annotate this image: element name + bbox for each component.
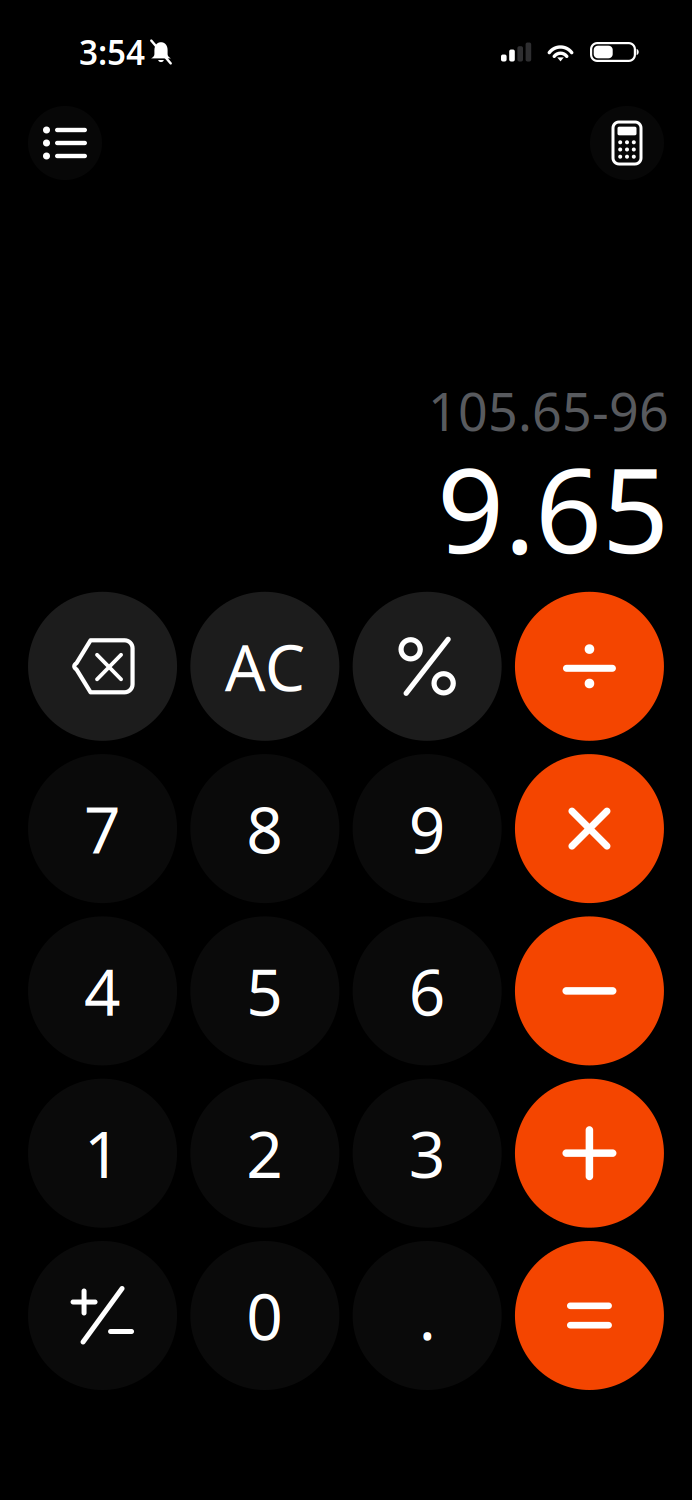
button[interactable]: 5 — [190, 916, 339, 1065]
button[interactable]: Divide — [515, 592, 664, 741]
staticText: 6 — [409, 948, 446, 1033]
button[interactable]: 3 — [353, 1079, 502, 1228]
staticText: 0 — [246, 1273, 283, 1358]
button[interactable]: 8 — [190, 754, 339, 903]
staticText: 5 — [246, 948, 283, 1033]
staticText: 105.65-96 — [428, 376, 669, 445]
button[interactable]: Equals — [515, 1241, 664, 1390]
staticText: 2 — [246, 1111, 283, 1196]
staticText: 3:54 — [79, 30, 145, 74]
button[interactable]: Multiply — [515, 754, 664, 903]
staticText: AC — [225, 624, 305, 709]
button[interactable]: Delete — [28, 592, 177, 741]
staticText: 1 — [84, 1111, 121, 1196]
button[interactable]: 4 — [28, 916, 177, 1065]
button[interactable]: 7 — [28, 754, 177, 903]
button[interactable]: Percent — [353, 592, 502, 741]
button[interactable]: 2 — [190, 1079, 339, 1228]
button[interactable]: 6 — [353, 916, 502, 1065]
staticText: 7 — [84, 786, 121, 871]
button[interactable]: 1 — [28, 1079, 177, 1228]
staticText: 4 — [84, 948, 121, 1033]
button[interactable]: AC — [190, 592, 339, 741]
staticText: . — [419, 1273, 436, 1358]
staticText: 9.65 — [437, 430, 669, 586]
button[interactable]: Calculator mode — [590, 106, 664, 180]
button[interactable]: 0 — [190, 1241, 339, 1390]
staticText: 8 — [246, 786, 283, 871]
button[interactable]: Toggle sign — [28, 1241, 177, 1390]
button[interactable]: Plus — [515, 1079, 664, 1228]
button[interactable]: History — [28, 106, 102, 180]
button[interactable]: 9 — [353, 754, 502, 903]
button[interactable]: . — [353, 1241, 502, 1390]
staticText: 9 — [409, 786, 446, 871]
button[interactable]: Minus — [515, 916, 664, 1065]
staticText: 3 — [409, 1111, 446, 1196]
